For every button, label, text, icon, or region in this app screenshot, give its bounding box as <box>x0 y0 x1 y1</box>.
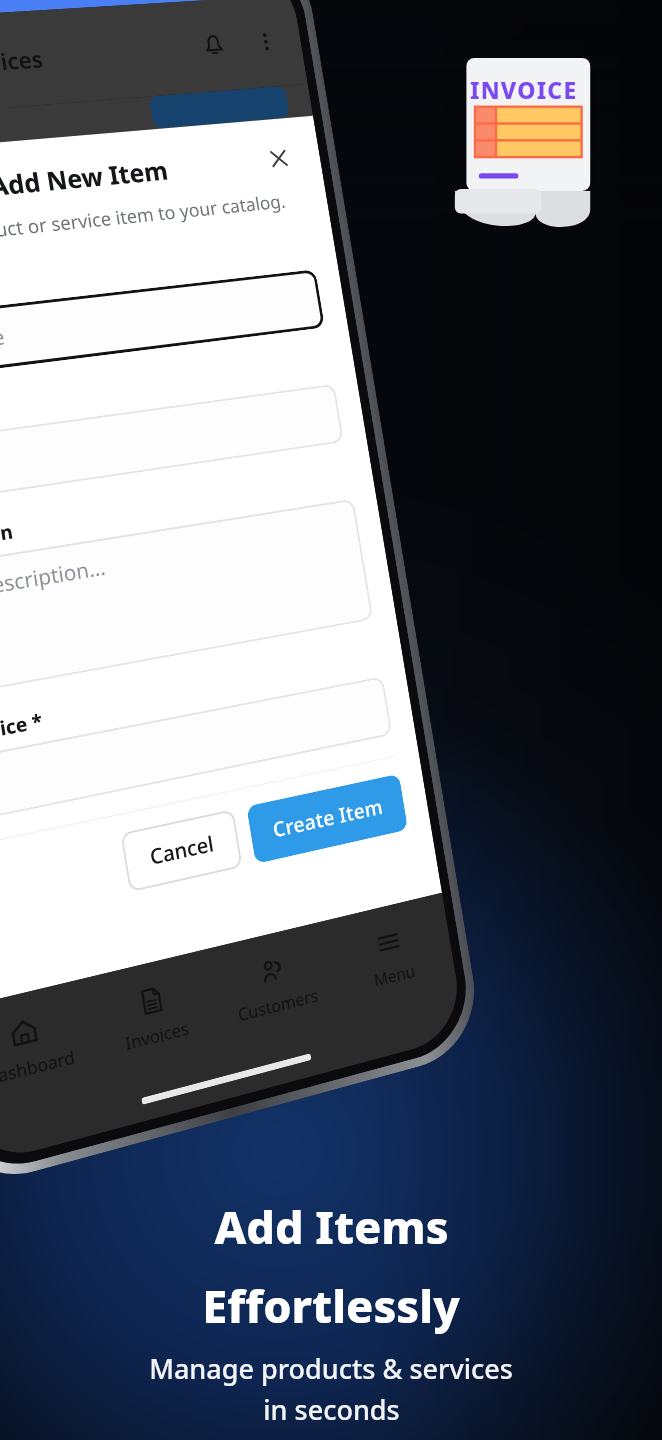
staticText: Unit Price * <box>0 707 44 755</box>
staticText: Menu <box>372 959 417 992</box>
staticText: in seconds <box>263 1391 400 1428</box>
button[interactable]: Category <box>0 384 344 508</box>
button[interactable]: More options <box>242 19 290 65</box>
button[interactable]: Customers <box>213 937 335 1034</box>
button[interactable]: Create Item <box>246 774 408 864</box>
staticText: INVOICE <box>470 74 578 105</box>
staticText: Cancel <box>148 829 216 872</box>
button[interactable]: Close <box>258 138 300 179</box>
button[interactable]: 0.00 <box>0 676 392 827</box>
button[interactable]: Notifications <box>189 22 238 69</box>
staticText: Customers <box>236 983 320 1026</box>
button[interactable]: Invoices <box>89 966 217 1066</box>
staticText: Item Name <box>0 322 7 365</box>
staticText: Dashboard <box>0 1045 77 1091</box>
button[interactable]: Cancel <box>120 809 243 892</box>
staticText: Effortlessly <box>202 1275 460 1336</box>
button[interactable]: Dashboard <box>0 996 92 1099</box>
staticText: Invoices <box>123 1016 191 1055</box>
staticText: Description <box>0 518 15 562</box>
staticText: Item description... <box>0 552 108 611</box>
staticText: Add New Item <box>0 152 171 203</box>
staticText: Create Item <box>271 792 385 844</box>
staticText: Products & Services <box>0 43 45 89</box>
button[interactable]: Item description... <box>0 499 373 701</box>
button[interactable]: Menu <box>332 909 449 1004</box>
staticText: Add Items <box>214 1196 449 1257</box>
staticText: Add a new product or service item to you… <box>0 189 287 257</box>
staticText: Manage products & services <box>149 1350 513 1387</box>
button[interactable]: Item Name <box>0 269 325 384</box>
button[interactable] <box>149 86 290 129</box>
